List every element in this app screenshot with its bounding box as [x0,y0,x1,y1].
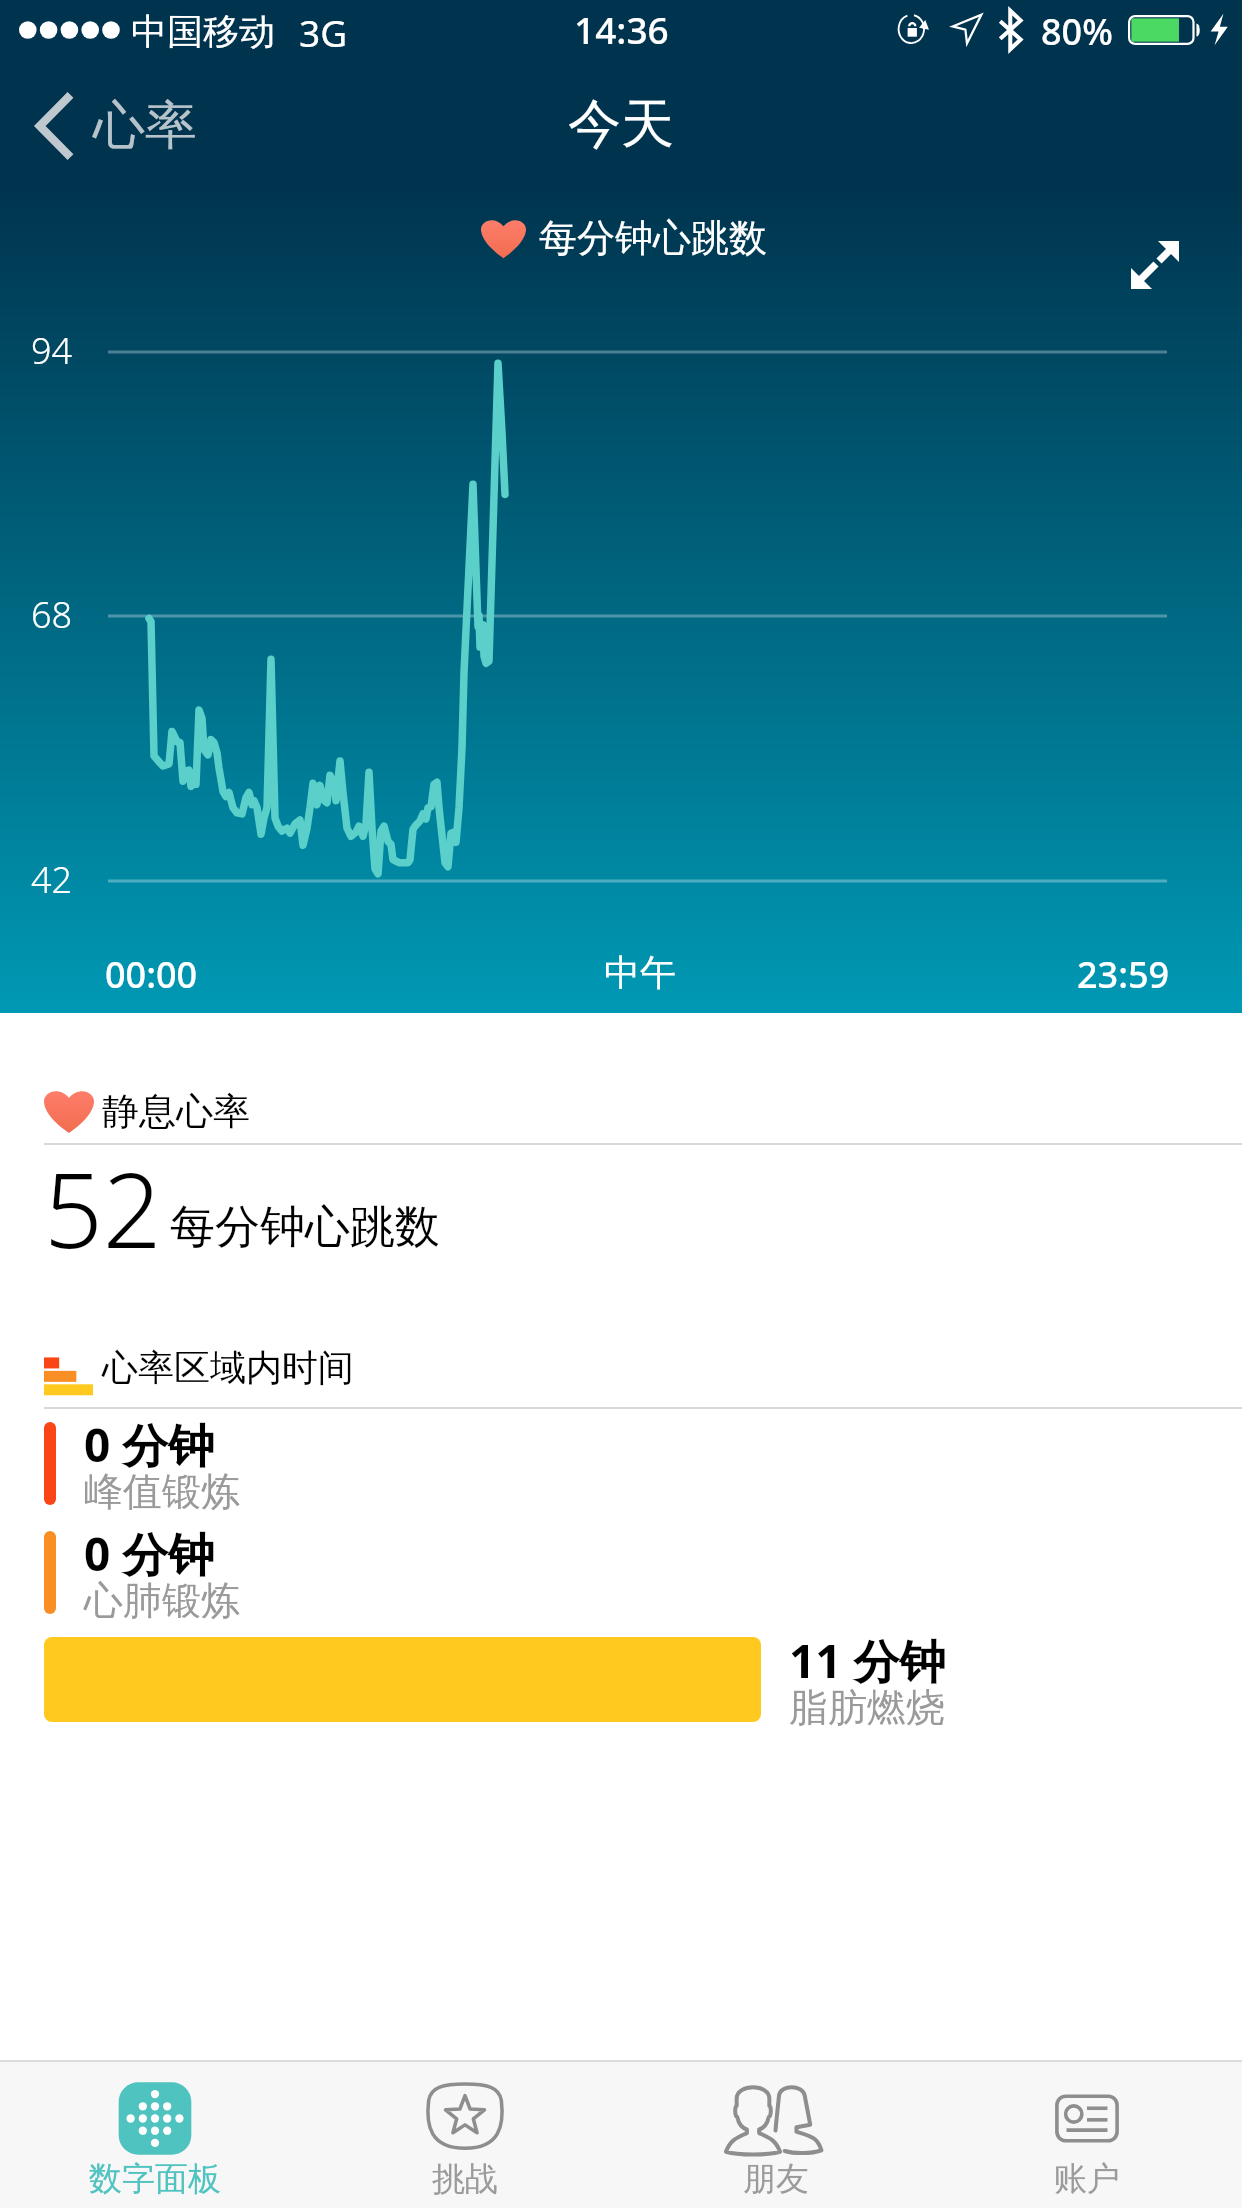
staticText: 23:59 [1077,950,1170,999]
staticText: 0 分钟 [84,1413,215,1476]
staticText: 静息心率 [102,1088,250,1135]
staticText: 中午 [604,950,676,995]
button[interactable]: 朋友 [620,2062,931,2200]
button[interactable]: 心率 [0,75,217,177]
staticText: 数字面板 [89,2158,221,2200]
staticText: 账户 [1054,2158,1120,2200]
staticText: 3G [299,7,348,57]
staticText: 52 [44,1138,162,1278]
staticText: 心肺锻炼 [84,1576,240,1625]
staticText: 中国移动 [131,9,275,54]
button[interactable]: 数字面板 [0,2062,310,2200]
button[interactable]: 0 分钟 [44,1516,240,1628]
staticText: 42 [31,855,73,904]
staticText: 每分钟心跳数 [170,1199,440,1256]
staticText: 00:00 [105,950,198,999]
staticText: 心率 [93,93,197,159]
staticText: 脂肪燃烧 [789,1683,945,1732]
staticText: 11 分钟 [789,1629,946,1692]
button[interactable]: Expand chart [1118,228,1192,302]
staticText: 今天 [568,91,674,158]
button[interactable]: 账户 [931,2062,1242,2200]
staticText: 峰值锻炼 [84,1467,240,1516]
staticText: 80% [1041,7,1113,56]
staticText: 心率区域内时间 [102,1345,354,1390]
staticText: 14:36 [574,4,669,54]
staticText: 挑战 [432,2158,498,2200]
staticText: 94 [31,326,73,375]
staticText: 0 分钟 [84,1522,215,1585]
button[interactable]: 0 分钟 [44,1407,240,1519]
staticText: 朋友 [743,2158,809,2200]
button[interactable]: 11 分钟 [44,1623,946,1735]
staticText: 每分钟心跳数 [539,214,767,262]
button[interactable]: 挑战 [310,2062,620,2200]
staticText: 68 [31,590,73,639]
